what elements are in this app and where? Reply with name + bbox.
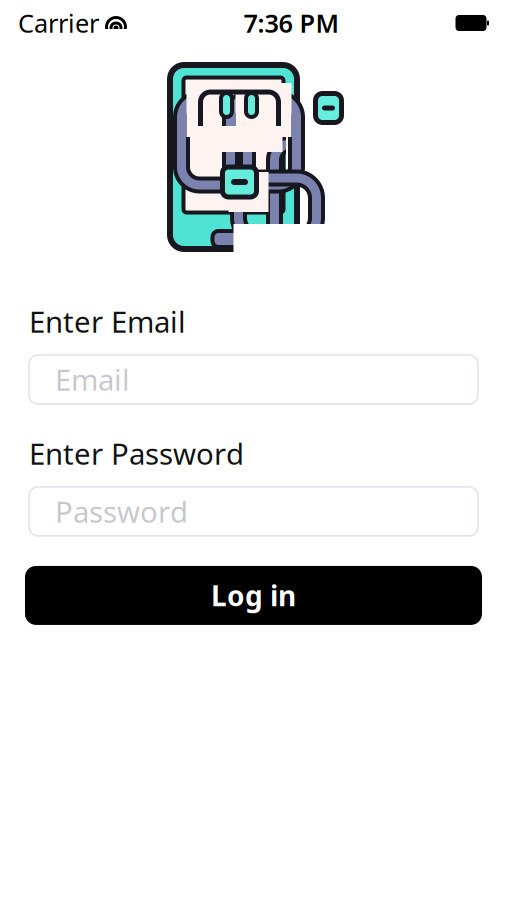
- staticText: Carrier: [18, 6, 99, 40]
- staticText: Log in: [211, 577, 296, 614]
- staticText: Enter Email: [29, 302, 186, 341]
- button[interactable]: Password: [29, 487, 478, 536]
- staticText: 7:36 PM: [243, 6, 339, 40]
- staticText: Password: [55, 492, 188, 531]
- button[interactable]: Email: [29, 355, 478, 404]
- staticText: Email: [55, 360, 130, 399]
- button[interactable]: Log in: [25, 566, 482, 625]
- staticText: Enter Password: [29, 434, 244, 473]
